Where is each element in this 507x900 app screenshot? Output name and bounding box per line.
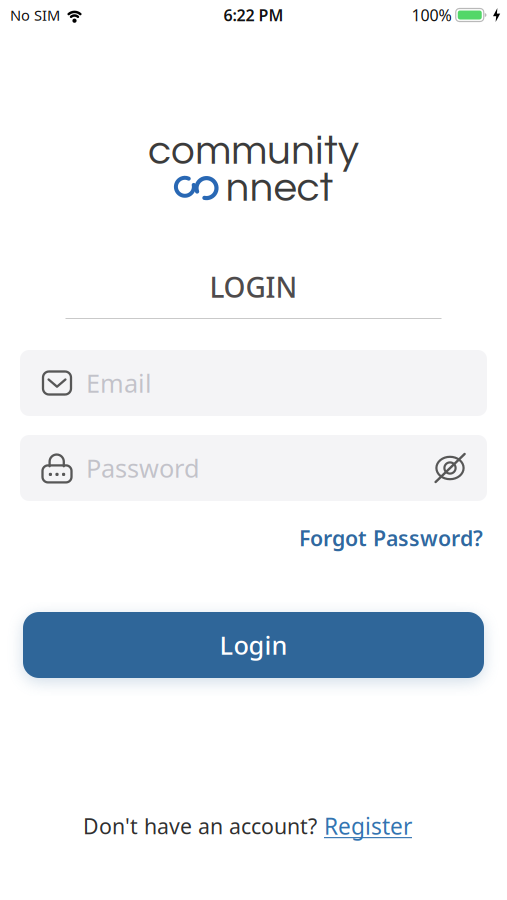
textField[interactable]: Email	[20, 350, 487, 416]
staticText: Login	[219, 628, 287, 662]
staticText: Password	[86, 451, 200, 485]
staticText: No SIM	[10, 5, 60, 25]
staticText: LOGIN	[209, 268, 297, 306]
button[interactable]: Login	[23, 612, 484, 678]
staticText: community	[148, 129, 359, 173]
staticText: 100%	[411, 4, 451, 26]
button[interactable]: Forgot Password?	[299, 524, 483, 552]
staticText: nnect	[225, 166, 333, 210]
secureTextField[interactable]: Password	[20, 435, 487, 501]
button[interactable]: Register	[324, 811, 412, 841]
staticText: Email	[86, 366, 152, 400]
staticText: Forgot Password?	[299, 524, 483, 552]
staticText: 6:22 PM	[223, 4, 283, 26]
staticText: Don't have an account?	[83, 812, 317, 840]
button[interactable]: Show password	[435, 453, 465, 483]
staticText: Register	[324, 811, 412, 841]
